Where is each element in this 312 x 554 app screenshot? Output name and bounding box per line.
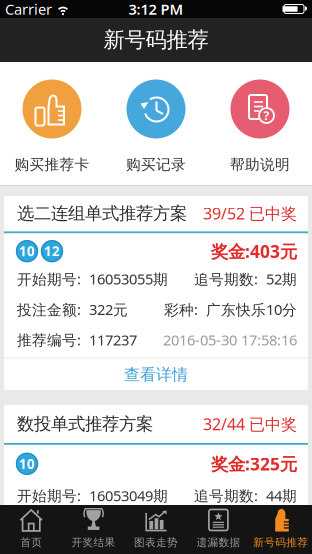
staticText: 12 — [44, 242, 60, 260]
staticText: 32/44 已中奖 — [203, 413, 297, 435]
staticText: 遗漏数据 — [196, 536, 240, 549]
staticText: 39/52 已中奖 — [203, 203, 297, 224]
staticText: 追号期数: 44期 — [194, 486, 297, 505]
staticText: 开始期号: 16053055期 — [17, 269, 168, 289]
staticText: 奖金:403元 — [211, 240, 297, 263]
staticText: 购买推荐卡 — [14, 155, 89, 173]
staticText: ? — [263, 107, 269, 123]
button[interactable]: 新号码推荐 — [250, 505, 312, 554]
staticText: 数投单式推荐方案 — [17, 413, 153, 435]
staticText: 开始期号: 16053049期 — [17, 486, 168, 505]
staticText: 10 — [19, 242, 35, 260]
staticText: 开奖结果 — [72, 536, 116, 549]
button[interactable]: 选二连组单式推荐方案 — [4, 196, 308, 390]
staticText: 图表走势 — [134, 536, 178, 549]
staticText: 追号期数: 52期 — [194, 269, 297, 289]
button[interactable]: 图表走势 — [125, 505, 187, 554]
button[interactable]: 遗漏数据 — [187, 505, 250, 554]
staticText: 投注金额: 322元 — [17, 300, 128, 319]
button[interactable]: 购买推荐卡 — [0, 61, 104, 185]
staticText: 2016-05-30 17:58:16 — [163, 330, 297, 350]
button[interactable]: 购买记录 — [104, 61, 208, 185]
staticText: 首页 — [20, 536, 42, 549]
staticText: 查看详情 — [124, 365, 188, 384]
staticText: 新号码推荐 — [253, 536, 308, 549]
button[interactable]: 数投单式推荐方案 — [4, 405, 308, 553]
staticText: Carrier — [5, 0, 52, 19]
staticText: 选二连组单式推荐方案 — [17, 203, 187, 224]
staticText: 新号码推荐 — [103, 27, 208, 53]
staticText: 推荐编号: 117237 — [17, 330, 137, 350]
button[interactable]: 首页 — [0, 505, 62, 554]
staticText: 彩种: 广东快乐10分 — [164, 300, 297, 319]
button[interactable]: 查看详情 — [4, 359, 308, 391]
staticText: 10 — [19, 455, 35, 473]
staticText: 购买记录 — [126, 155, 186, 173]
staticText: 帮助说明 — [230, 155, 290, 173]
button[interactable]: ? — [208, 61, 312, 185]
button[interactable]: 开奖结果 — [62, 505, 125, 554]
staticText: 3:12 PM — [128, 0, 183, 19]
staticText: 奖金:325元 — [211, 452, 297, 475]
